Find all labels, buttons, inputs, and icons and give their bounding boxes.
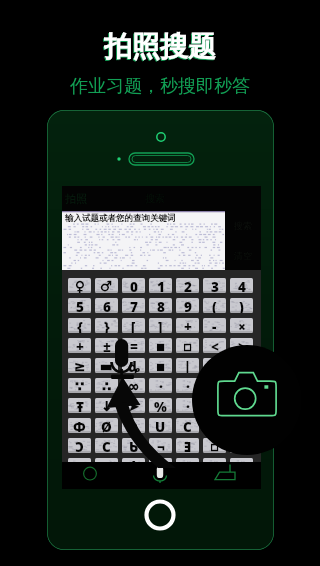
button[interactable]: %	[149, 398, 172, 413]
button[interactable]: ≥	[68, 358, 91, 373]
button[interactable]: ∩	[122, 418, 145, 433]
button[interactable]: Ŧ	[68, 398, 91, 413]
button[interactable]: ♂	[95, 278, 118, 293]
button[interactable]: ▪	[149, 338, 172, 353]
button[interactable]: ȡ	[122, 358, 145, 373]
staticText: ➤	[128, 398, 140, 413]
button[interactable]: 0	[122, 278, 145, 293]
button[interactable]: ▫	[176, 338, 199, 353]
button[interactable]: }	[95, 318, 118, 333]
button[interactable]: 6	[95, 298, 118, 313]
button[interactable]: ·	[230, 458, 253, 473]
button[interactable]: ▪	[203, 378, 226, 393]
button[interactable]: ·	[176, 398, 199, 413]
button[interactable]: ∆	[122, 458, 145, 473]
staticText: ⌐	[101, 458, 113, 473]
button[interactable]: ·	[203, 458, 226, 473]
button[interactable]: ▪	[149, 358, 172, 373]
staticText: C	[102, 438, 111, 453]
button[interactable]: 9	[176, 298, 199, 313]
button[interactable]: |	[203, 358, 226, 373]
staticText: [	[131, 318, 136, 333]
staticText: =	[130, 338, 138, 353]
button[interactable]: 拍照搜题	[192, 345, 302, 455]
button[interactable]: >	[230, 338, 253, 353]
staticText: |	[184, 358, 191, 373]
button[interactable]: 输入试题或者您的查询关键词	[62, 211, 225, 270]
button[interactable]: +	[176, 318, 199, 333]
button[interactable]: 3	[203, 278, 226, 293]
button[interactable]: ∞	[122, 378, 145, 393]
staticText: 3	[211, 278, 219, 293]
staticText: ⌐	[155, 458, 167, 473]
staticText: Ǝ	[184, 438, 192, 453]
button[interactable]: 8	[149, 298, 172, 313]
button[interactable]: ¬	[149, 438, 172, 453]
staticText: ↓	[101, 398, 113, 413]
button[interactable]: 2	[176, 278, 199, 293]
staticText: ∩	[128, 418, 139, 433]
button[interactable]: |	[176, 358, 199, 373]
button[interactable]: -	[203, 318, 226, 333]
button[interactable]: <	[203, 338, 226, 353]
button[interactable]: ·	[203, 398, 226, 413]
button[interactable]: ◿	[68, 458, 91, 473]
button[interactable]: (	[203, 298, 226, 313]
button[interactable]: Ø	[95, 418, 118, 433]
staticText: Ŧ	[76, 398, 84, 413]
button[interactable]: C	[95, 438, 118, 453]
button[interactable]: ×	[230, 318, 253, 333]
button[interactable]: Ǝ	[176, 438, 199, 453]
button[interactable]: ·	[230, 378, 253, 393]
staticText: 拍照	[65, 192, 87, 206]
button[interactable]: ·	[176, 378, 199, 393]
staticText: 8	[157, 298, 165, 313]
button[interactable]: ∴	[95, 378, 118, 393]
button[interactable]: ·	[149, 378, 172, 393]
staticText: 搜索	[234, 220, 252, 231]
button[interactable]: ▫	[203, 438, 226, 453]
staticText: (	[212, 298, 217, 313]
button[interactable]: 7	[122, 298, 145, 313]
staticText: ∞	[128, 378, 140, 393]
staticText: 2	[184, 278, 192, 293]
button[interactable]: ➤	[122, 398, 145, 413]
button[interactable]: C	[176, 418, 199, 433]
button[interactable]: ♀	[68, 278, 91, 293]
button[interactable]: ·	[230, 398, 253, 413]
button[interactable]: 1	[149, 278, 172, 293]
staticText: ·	[240, 358, 244, 373]
button[interactable]: ∵	[68, 378, 91, 393]
button[interactable]: ·	[230, 358, 253, 373]
button[interactable]: {	[68, 318, 91, 333]
button[interactable]: +	[68, 338, 91, 353]
button[interactable]: ↓	[95, 398, 118, 413]
button[interactable]: ⌐	[149, 458, 172, 473]
button[interactable]: ]	[149, 318, 172, 333]
button[interactable]: U	[149, 418, 172, 433]
staticText: ∴	[102, 378, 112, 393]
button[interactable]: )	[230, 298, 253, 313]
staticText: ·	[186, 378, 190, 393]
button[interactable]: ▬	[95, 358, 118, 373]
button[interactable]: ·	[230, 438, 253, 453]
staticText: 5	[76, 298, 84, 313]
staticText: ·	[240, 398, 244, 413]
staticText: %	[154, 398, 167, 413]
button[interactable]: [	[122, 318, 145, 333]
button[interactable]: ±	[95, 338, 118, 353]
button[interactable]: Ƅ	[122, 438, 145, 453]
button[interactable]: Φ	[68, 418, 91, 433]
button[interactable]: =	[122, 338, 145, 353]
button[interactable]: ·	[176, 458, 199, 473]
button[interactable]: ⌐	[95, 458, 118, 473]
button[interactable]: Ɔ	[68, 438, 91, 453]
button[interactable]: 4	[230, 278, 253, 293]
button[interactable]: 5	[68, 298, 91, 313]
